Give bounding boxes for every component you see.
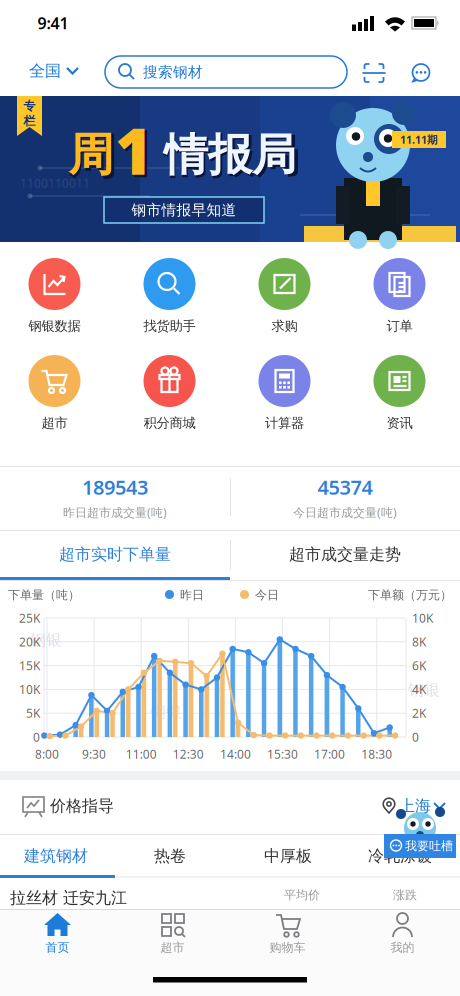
staticText: 建筑钢材	[24, 846, 88, 866]
staticText: 超市	[160, 940, 184, 955]
staticText: 12:30	[173, 746, 204, 762]
staticText: 情报局	[164, 128, 296, 182]
staticText: 超市成交量走势	[289, 545, 401, 564]
staticText: 8:00	[35, 746, 59, 762]
staticText: 17:00	[314, 746, 345, 762]
button[interactable]: 我要吐槽	[384, 805, 456, 863]
staticText: 计算器	[265, 415, 304, 431]
staticText: 189543	[82, 474, 148, 500]
staticText: 我的	[390, 940, 414, 955]
button[interactable]: 订单	[349, 258, 449, 346]
button[interactable]: 45374	[293, 474, 397, 520]
staticText: 1	[117, 109, 155, 195]
staticText: 专	[23, 99, 35, 113]
button[interactable]	[364, 64, 383, 82]
button[interactable]: 上海	[382, 796, 446, 816]
staticText: 10K	[19, 681, 40, 697]
button[interactable]: 超市成交量走势	[230, 531, 460, 578]
button[interactable]: 超市	[4, 355, 104, 443]
button[interactable]: 计算器	[234, 355, 334, 443]
staticText: 周	[69, 127, 117, 186]
button[interactable]: 中厚板	[264, 846, 312, 866]
button[interactable]: 首页	[0, 909, 115, 983]
staticText: 订单	[386, 318, 412, 334]
staticText: 1100110011	[20, 175, 90, 191]
button[interactable]: 超市	[115, 909, 230, 983]
staticText: 资讯	[386, 415, 412, 431]
staticText: 18:30	[361, 746, 392, 762]
button[interactable]: 热卷	[154, 846, 186, 866]
staticText: 昨日超市成交量(吨)	[63, 504, 167, 520]
button[interactable]: 积分商城	[119, 355, 219, 443]
staticText: 情报局	[164, 129, 299, 185]
button[interactable]: 搜索钢材	[105, 56, 347, 88]
staticText: 找货助手	[143, 318, 195, 334]
staticText: 今日	[255, 588, 279, 602]
staticText: 价格指导	[50, 796, 114, 816]
button[interactable]: 钢银数据	[4, 258, 104, 346]
staticText: 15:30	[267, 746, 298, 762]
staticText: 平均价	[284, 888, 320, 902]
staticText: 栏	[23, 114, 35, 128]
staticText: 9:41	[37, 12, 68, 34]
staticText: 超市实时下单量	[59, 545, 171, 564]
staticText: 钢银	[150, 702, 182, 722]
staticText: 4K	[412, 681, 426, 697]
staticText: 9:30	[82, 746, 106, 762]
staticText: 热卷	[154, 846, 186, 866]
staticText: 1	[115, 107, 153, 192]
staticText: 下单额（万元）	[368, 588, 452, 602]
button[interactable]: 冷轧涂镀	[368, 846, 432, 866]
staticText: 25K	[19, 610, 40, 626]
staticText: 0	[412, 729, 419, 745]
staticText: 购物车	[269, 940, 305, 955]
button[interactable]	[411, 64, 430, 82]
staticText: 钢银	[408, 680, 440, 700]
staticText: 20K	[19, 634, 40, 650]
staticText: 14:00	[220, 746, 251, 762]
staticText: 8K	[412, 634, 426, 650]
staticText: 首页	[45, 940, 69, 955]
staticText: 上海	[399, 796, 431, 816]
staticText: 5K	[26, 705, 40, 721]
staticText: 0	[33, 729, 40, 745]
staticText: 求购	[271, 318, 297, 334]
button[interactable]: 1100110011	[0, 96, 460, 242]
button[interactable]: 我的	[345, 909, 460, 983]
staticText: 6K	[412, 658, 426, 673]
staticText: 11:00	[126, 746, 157, 762]
staticText: 昨日	[180, 588, 204, 602]
staticText: 搜索钢材	[143, 63, 203, 81]
button[interactable]: 找货助手	[119, 258, 219, 346]
button[interactable]: 189543	[63, 474, 167, 520]
staticText: 冷轧涂镀	[368, 846, 432, 866]
staticText: 下单量（吨）	[8, 588, 80, 602]
staticText: 钢银	[30, 630, 62, 650]
staticText: 拉丝材 迁安九江	[10, 888, 127, 908]
staticText: 钢银数据	[28, 318, 80, 334]
staticText: 45374	[317, 474, 372, 500]
staticText: 我要吐槽	[405, 839, 453, 853]
button[interactable]: 建筑钢材	[24, 846, 88, 866]
button[interactable]: 资讯	[349, 355, 449, 443]
staticText: 今日超市成交量(吨)	[293, 504, 397, 520]
staticText: 钢市情报早知道	[131, 201, 236, 219]
staticText: 中厚板	[264, 846, 312, 866]
button[interactable]: 全国	[29, 61, 79, 81]
staticText: 11.11期	[400, 132, 438, 147]
staticText: 涨跌	[393, 888, 417, 902]
staticText: 2K	[412, 705, 426, 721]
staticText: 积分商城	[143, 415, 195, 431]
button[interactable]: 超市实时下单量	[0, 531, 230, 578]
staticText: 周	[68, 127, 113, 183]
staticText: 全国	[29, 61, 61, 81]
staticText: 15K	[19, 658, 40, 673]
button[interactable]: 购物车	[230, 909, 345, 983]
staticText: 10K	[412, 610, 433, 626]
button[interactable]: 求购	[234, 258, 334, 346]
staticText: 超市	[41, 415, 67, 431]
